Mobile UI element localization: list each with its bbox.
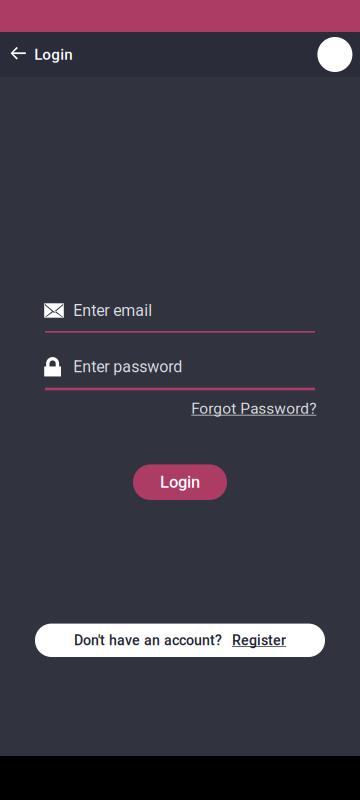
staticText: Register [232,632,286,649]
button[interactable]: Back [0,32,80,77]
button[interactable]: Forgot Password? [191,399,316,417]
staticText: Login [34,46,72,63]
button[interactable]: Don't have an account? [35,624,325,657]
staticText: Forgot Password? [191,399,316,417]
staticText: Enter password [73,357,182,376]
staticText: Don't have an account? [74,632,222,649]
button[interactable]: Enter email [45,303,315,333]
staticText: Enter email [73,301,152,320]
button[interactable]: Login [133,464,227,500]
button[interactable]: Account [317,32,360,77]
staticText: Login [160,472,200,492]
button[interactable]: Enter password [45,357,315,390]
